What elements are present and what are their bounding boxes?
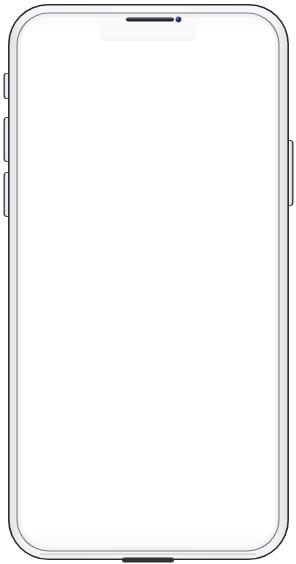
button[interactable]: iPhone device mockup with blank screen (0, 0, 296, 564)
